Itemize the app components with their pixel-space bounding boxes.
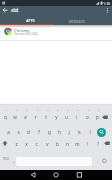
- staticText: r: [35, 114, 37, 120]
- staticText: 6: [57, 109, 59, 112]
- staticText: x: [25, 141, 28, 147]
- staticText: l: [89, 129, 91, 135]
- staticText: w: [13, 114, 17, 120]
- staticText: Chrome: [14, 28, 30, 34]
- staticText: 2: [16, 109, 18, 112]
- staticText: z: [15, 141, 18, 147]
- staticText: APPS: [26, 19, 35, 23]
- button[interactable]: [81, 106, 91, 120]
- staticText: 9: [88, 109, 90, 112]
- button[interactable]: [31, 106, 41, 120]
- button[interactable]: [0, 15, 56, 25]
- staticText: WIDGETS: [69, 19, 85, 23]
- button[interactable]: [27, 170, 39, 180]
- staticText: abc: [11, 7, 19, 13]
- staticText: n: [66, 141, 69, 147]
- staticText: k: [78, 129, 81, 135]
- button[interactable]: [97, 128, 106, 137]
- staticText: f: [38, 129, 40, 135]
- staticText: ?: [97, 141, 99, 147]
- button[interactable]: [73, 170, 85, 180]
- staticText: 0: [98, 109, 100, 112]
- button[interactable]: [0, 6, 10, 15]
- staticText: 3: [26, 109, 28, 112]
- staticText: a: [7, 129, 10, 135]
- staticText: c: [35, 141, 38, 147]
- staticText: p: [96, 114, 99, 120]
- staticText: o: [86, 114, 89, 120]
- staticText: e: [24, 114, 27, 120]
- staticText: g: [48, 129, 51, 135]
- staticText: 7: [67, 109, 69, 112]
- staticText: m: [75, 141, 80, 147]
- button[interactable]: [103, 6, 112, 15]
- staticText: ?123: [2, 157, 9, 161]
- staticText: 5: [47, 109, 49, 112]
- staticText: j: [68, 129, 70, 135]
- button[interactable]: [0, 26, 112, 40]
- button[interactable]: [61, 106, 71, 120]
- staticText: 4: [37, 109, 39, 112]
- button[interactable]: [41, 106, 51, 120]
- button[interactable]: [71, 106, 81, 120]
- button[interactable]: [51, 106, 61, 120]
- staticText: b: [56, 141, 59, 147]
- staticText: y: [55, 114, 58, 120]
- button[interactable]: [56, 15, 112, 25]
- staticText: ,: [13, 158, 15, 164]
- staticText: 1:36: [103, 1, 111, 6]
- button[interactable]: [102, 106, 112, 120]
- staticText: .: [96, 158, 98, 164]
- button[interactable]: [10, 106, 20, 120]
- button[interactable]: [0, 106, 10, 120]
- staticText: !: [86, 141, 88, 147]
- staticText: q: [4, 114, 7, 120]
- staticText: t: [45, 114, 47, 120]
- staticText: 8: [77, 109, 79, 112]
- staticText: h: [58, 129, 61, 135]
- button[interactable]: [92, 106, 102, 120]
- staticText: d: [27, 129, 30, 135]
- button[interactable]: [20, 106, 30, 120]
- staticText: u: [65, 114, 68, 120]
- staticText: i: [75, 114, 77, 120]
- staticText: Version 49.0.2623.105 (2564...: [14, 32, 38, 36]
- staticText: s: [17, 129, 20, 135]
- staticText: 1: [6, 109, 8, 112]
- button[interactable]: [50, 170, 62, 180]
- staticText: v: [46, 141, 49, 147]
